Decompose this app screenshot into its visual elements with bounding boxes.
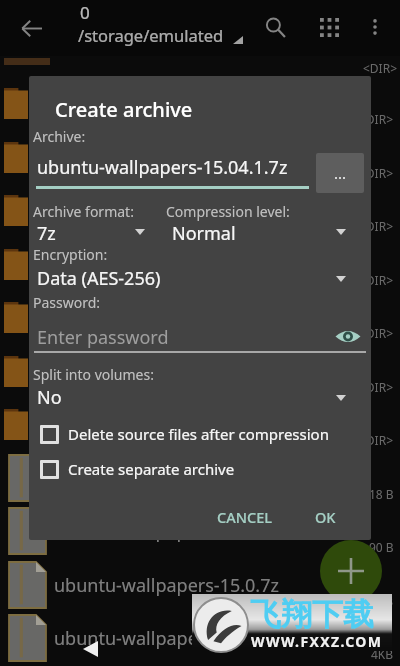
staticText: 7KB xyxy=(371,593,394,609)
staticText: Data (AES-256) xyxy=(37,266,161,291)
staticText: <DIR> xyxy=(359,379,394,395)
staticText: Archive: xyxy=(33,127,86,146)
button[interactable]: Browse xyxy=(316,153,364,193)
button[interactable]: Back xyxy=(11,8,51,48)
button[interactable]: Change view xyxy=(309,7,349,47)
button[interactable]: Download xyxy=(0,237,400,291)
staticText: 0 xyxy=(80,1,90,24)
staticText: Normal xyxy=(172,221,236,246)
staticText: <DIR> xyxy=(359,432,394,448)
button[interactable]: DCIM xyxy=(0,183,400,237)
button[interactable]: CANCEL xyxy=(205,497,284,537)
staticText: WWW.FXXZ.COM xyxy=(251,632,383,651)
button[interactable]: Android xyxy=(0,130,400,184)
staticText: ubuntu-wallpapers-15.0.7z xyxy=(54,573,279,598)
staticText: Movies xyxy=(54,305,114,330)
button[interactable]: ubuntu-wallpapers-15.0.7z xyxy=(0,558,400,612)
staticText: <DIR> xyxy=(363,60,398,76)
staticText: ubuntu-wallpapers-15.04.7z xyxy=(54,519,290,544)
staticText: ubuntu-wallpapers-15.0.7z xyxy=(54,626,279,651)
staticText: 4KB xyxy=(371,646,394,662)
staticText: 90 B xyxy=(369,539,394,555)
button[interactable]: ubuntu-wallpapers-15.0.7z xyxy=(0,611,400,665)
button[interactable]: Search xyxy=(255,7,295,47)
staticText: <DIR> xyxy=(359,325,394,341)
staticText: Alarms xyxy=(54,91,114,116)
button[interactable]: OK xyxy=(303,497,348,537)
staticText: 18 B xyxy=(369,486,394,502)
staticText: CANCEL xyxy=(217,507,272,527)
staticText: 飞翔下载 xyxy=(250,595,374,634)
staticText: Create separate archive xyxy=(68,459,235,479)
staticText: Notifications xyxy=(54,412,162,437)
button[interactable]: Show password xyxy=(332,320,364,352)
staticText: Download xyxy=(54,252,140,277)
staticText: Archive format: xyxy=(33,202,134,221)
button[interactable]: Alarms xyxy=(0,76,400,130)
staticText: Enter password xyxy=(37,325,169,350)
staticText: <DIR> xyxy=(359,111,394,127)
staticText: ubuntu-wallpapers-15.04.1.7z xyxy=(54,466,305,491)
staticText: Compression level: xyxy=(166,202,290,221)
staticText: Password: xyxy=(33,293,101,312)
button[interactable]: Music xyxy=(0,344,400,398)
staticText: Music xyxy=(54,359,104,384)
staticText: ubuntu-wallpapers-15.04.1.7z xyxy=(37,155,288,180)
button[interactable]: ubuntu-wallpapers-15.04.7z xyxy=(0,504,400,558)
button[interactable]: ubuntu-wallpapers-15.04.1.7z xyxy=(0,451,400,505)
button[interactable]: New item xyxy=(320,540,382,602)
staticText: ... xyxy=(334,163,347,183)
staticText: Delete source files after compression xyxy=(68,424,329,444)
staticText: <DIR> xyxy=(359,218,394,234)
staticText: DCIM xyxy=(54,198,101,223)
button[interactable]: Movies xyxy=(0,290,400,344)
button[interactable]: Notifications xyxy=(0,397,400,451)
staticText: Split into volumes: xyxy=(33,365,154,384)
staticText: Android xyxy=(54,145,122,170)
staticText: Encryption: xyxy=(33,245,108,264)
button[interactable]: Create separate archive xyxy=(29,455,371,483)
staticText: OK xyxy=(315,507,336,527)
staticText: Create archive xyxy=(55,96,193,123)
staticText: <DIR> xyxy=(359,165,394,181)
staticText: <DIR> xyxy=(359,272,394,288)
staticText: 7z xyxy=(37,221,56,246)
button[interactable]: More options xyxy=(357,9,393,45)
staticText: No xyxy=(37,385,62,410)
staticText: /storage/emulated xyxy=(78,24,224,46)
button[interactable]: Delete source files after compression xyxy=(29,420,371,448)
